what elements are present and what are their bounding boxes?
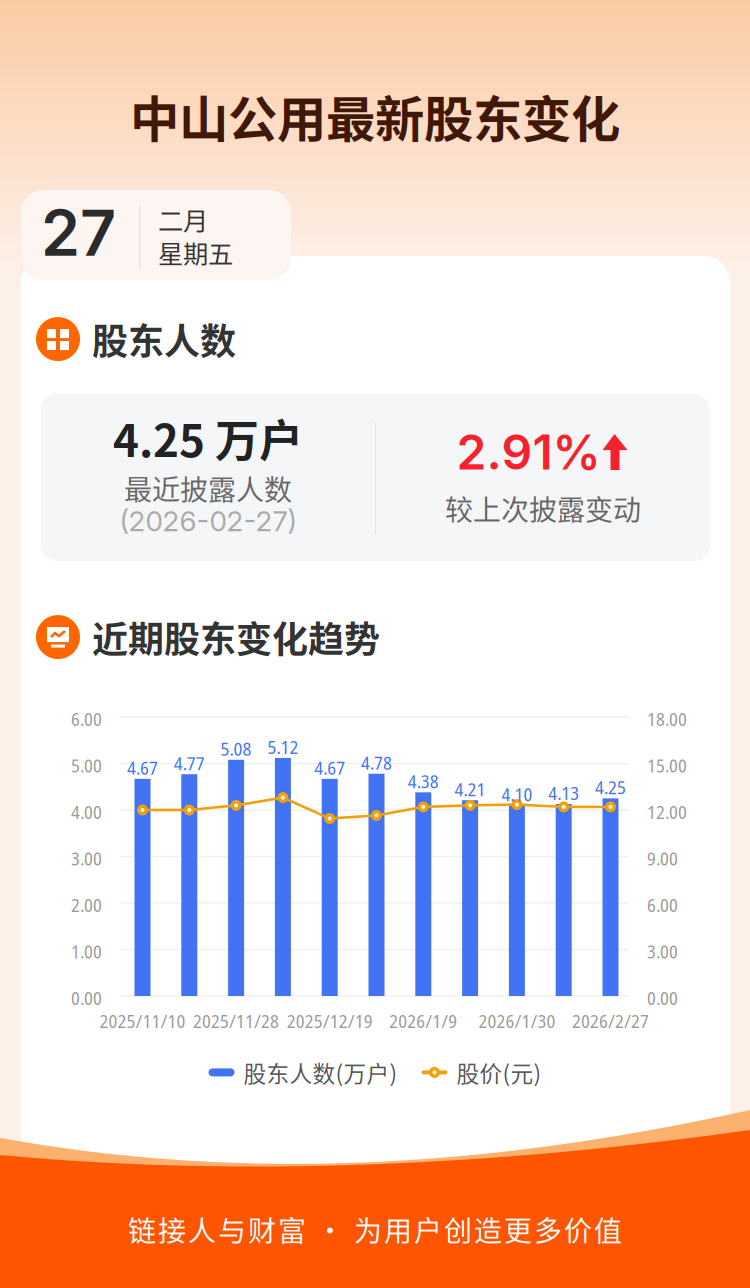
staticText: 2026/2/27: [572, 1008, 649, 1033]
staticText: 股价(元): [456, 1056, 541, 1089]
staticText: 链接人与财富 · 为用户创造更多价值: [128, 1209, 622, 1249]
staticText: 27: [41, 195, 116, 271]
staticText: 3.00: [647, 938, 678, 964]
staticText: 星期五: [158, 234, 233, 271]
staticText: 12.00: [647, 799, 687, 824]
staticText: 6.00: [71, 706, 102, 731]
staticText: 4.10: [501, 781, 532, 807]
staticText: 股东人数(万户): [243, 1056, 397, 1089]
staticText: 4.67: [127, 755, 158, 780]
staticText: 4.00: [71, 799, 102, 824]
staticText: 4.77: [174, 750, 205, 776]
staticText: 中山公用最新股东变化: [130, 80, 620, 151]
staticText: 2.00: [71, 892, 102, 917]
staticText: 近期股东变化趋势: [92, 611, 380, 663]
staticText: 4.13: [548, 780, 579, 805]
staticText: 4.38: [408, 768, 439, 794]
staticText: 4.25: [595, 774, 626, 800]
staticText: 6.00: [647, 892, 678, 917]
staticText: 4.67: [314, 755, 345, 780]
staticText: 较上次披露变动: [445, 488, 641, 528]
staticText: 5.12: [267, 734, 298, 759]
staticText: 2026/1/30: [478, 1008, 555, 1033]
staticText: 5.08: [221, 736, 252, 761]
staticText: 3.00: [71, 845, 102, 871]
staticText: 0.00: [71, 985, 102, 1010]
staticText: 4.78: [361, 750, 392, 775]
staticText: 18.00: [647, 706, 687, 731]
staticText: 2025/12/19: [287, 1008, 373, 1033]
staticText: 2025/11/28: [193, 1008, 279, 1033]
staticText: 最近披露人数: [124, 468, 292, 508]
staticText: 9.00: [647, 845, 678, 871]
staticText: 二月: [158, 201, 208, 238]
staticText: 1.00: [71, 938, 102, 964]
staticText: 15.00: [647, 752, 687, 778]
staticText: 0.00: [647, 985, 678, 1010]
staticText: 2.91%: [456, 423, 600, 481]
staticText: (2026-02-27): [119, 504, 296, 538]
staticText: 2026/1/9: [389, 1008, 457, 1033]
staticText: 4.21: [455, 776, 486, 802]
staticText: 4.25 万户: [113, 406, 303, 470]
staticText: 2025/11/10: [99, 1008, 185, 1033]
staticText: 5.00: [71, 752, 102, 778]
staticText: 股东人数: [92, 313, 236, 365]
